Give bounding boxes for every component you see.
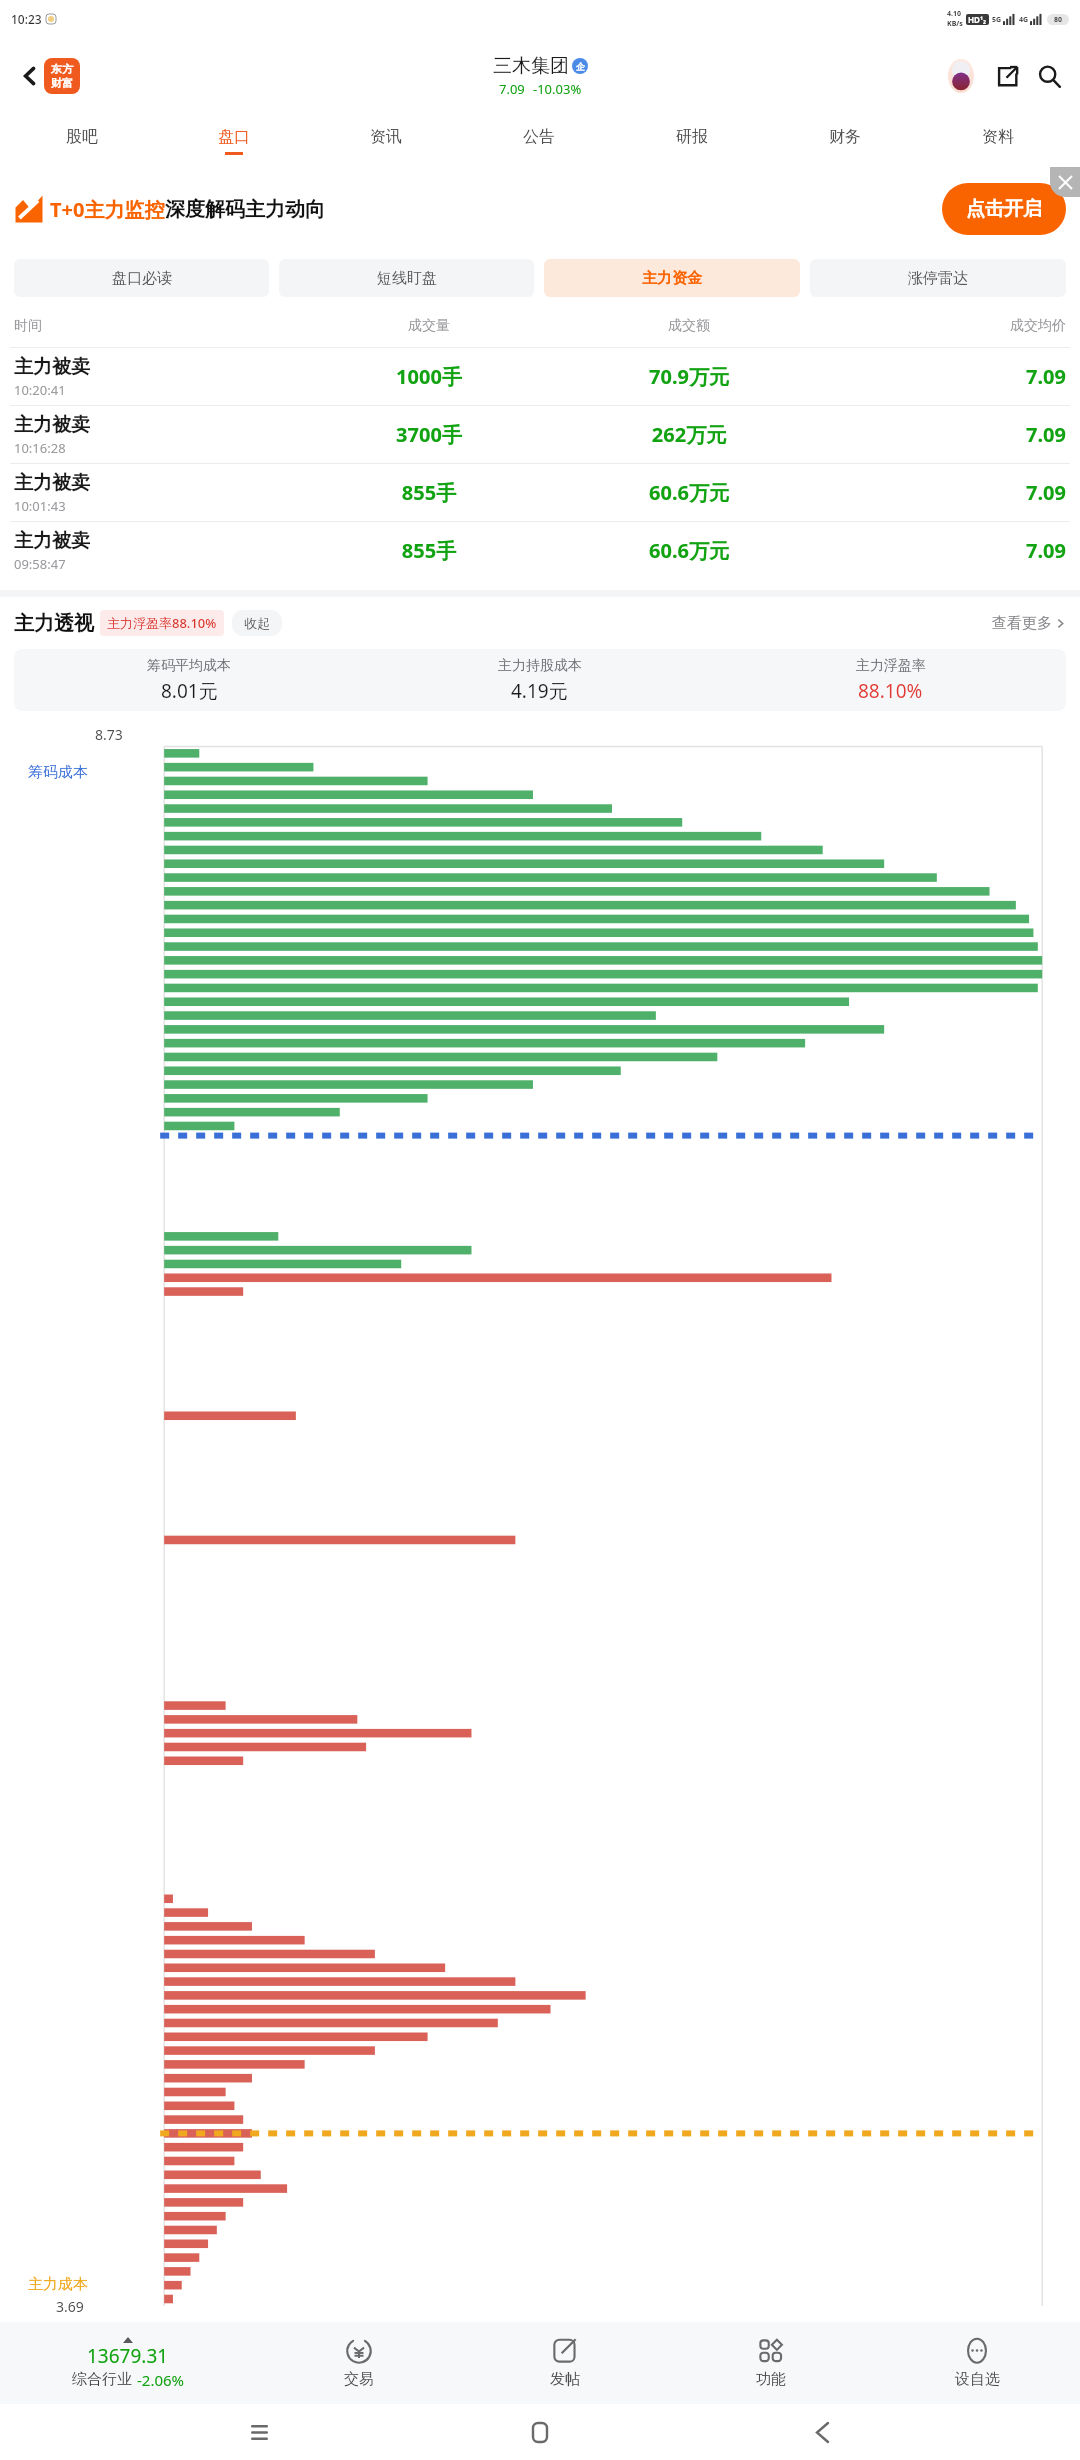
staticText: 三木集团: [493, 54, 569, 78]
staticText: 交易: [344, 2370, 374, 2389]
staticText: 主力被卖: [14, 355, 90, 379]
button[interactable]: 筹码平均成本: [14, 649, 1066, 711]
staticText: 主力被卖: [14, 529, 90, 553]
button[interactable]: T+0主力监控: [14, 167, 1066, 251]
staticText: 企: [576, 61, 585, 72]
staticText: 时间: [14, 317, 299, 335]
staticText: -2.06%: [137, 2370, 185, 2390]
staticText: 80: [1054, 15, 1063, 25]
staticText: 深度解码主力动向: [165, 197, 325, 222]
staticText: 4.10: [947, 9, 961, 19]
staticText: 公告: [523, 127, 555, 147]
button[interactable]: 主力浮盈率88.10%: [107, 614, 217, 632]
button[interactable]: 东方: [44, 58, 80, 94]
staticText: 资料: [982, 127, 1014, 147]
staticText: 10:23: [11, 11, 42, 27]
staticText: 10:20:41: [14, 381, 66, 399]
staticText: 设自选: [955, 2370, 1000, 2389]
button[interactable]: 股吧: [6, 115, 158, 167]
button[interactable]: 设自选: [874, 2322, 1080, 2404]
staticText: 主力透视: [14, 611, 94, 636]
button[interactable]: 短线盯盘: [279, 259, 534, 297]
staticText: 盘口必读: [112, 269, 172, 288]
staticText: 09:58:47: [14, 555, 66, 573]
staticText: 盘口: [218, 127, 250, 147]
button[interactable]: 财务: [768, 115, 921, 167]
staticText: 主力被卖: [14, 471, 90, 495]
staticText: 10:16:28: [14, 439, 66, 457]
staticText: 东方: [51, 62, 73, 76]
button[interactable]: 功能: [668, 2322, 874, 2404]
staticText: 10:01:43: [14, 497, 66, 515]
staticText: 7.09: [819, 537, 1066, 564]
staticText: 财富: [51, 76, 73, 90]
button[interactable]: Close: [1050, 167, 1080, 197]
staticText: 4G: [1019, 15, 1029, 25]
staticText: 88.10%: [858, 678, 923, 704]
button[interactable]: 盘口必读: [14, 259, 269, 297]
staticText: 发帖: [550, 2370, 580, 2389]
button[interactable]: 收起: [244, 615, 270, 631]
staticText: 功能: [756, 2370, 786, 2389]
button[interactable]: 发帖: [462, 2322, 668, 2404]
staticText: 3.69: [56, 2297, 84, 2316]
staticText: 13679.31: [87, 2343, 169, 2369]
staticText: 主力成本: [28, 2275, 88, 2294]
staticText: 综合行业: [72, 2370, 132, 2389]
button[interactable]: 主力被卖: [14, 406, 1066, 463]
staticText: 短线盯盘: [377, 269, 437, 288]
button[interactable]: Back: [799, 2409, 845, 2455]
staticText: 60.6万元: [559, 479, 819, 506]
button[interactable]: 主力被卖: [14, 464, 1066, 521]
staticText: 成交量: [299, 317, 559, 335]
staticText: 涨停雷达: [908, 269, 968, 288]
button[interactable]: 主力被卖: [14, 348, 1066, 405]
staticText: 成交均价: [819, 317, 1066, 335]
button[interactable]: Recents: [236, 2409, 282, 2455]
staticText: 8.01元: [161, 678, 218, 704]
button[interactable]: 公告: [462, 115, 615, 167]
button[interactable]: 资讯: [310, 115, 462, 167]
staticText: 7.09: [499, 80, 525, 98]
staticText: KB/s: [947, 19, 963, 29]
button[interactable]: Share: [990, 59, 1024, 93]
button[interactable]: 交易: [256, 2322, 462, 2404]
staticText: 262万元: [559, 421, 819, 448]
button[interactable]: 涨停雷达: [810, 259, 1066, 297]
staticText: 5G: [992, 15, 1002, 25]
staticText: -10.03%: [533, 80, 582, 98]
staticText: 成交额: [559, 317, 819, 335]
staticText: 点击开启: [966, 197, 1042, 221]
staticText: 主力被卖: [14, 413, 90, 437]
button[interactable]: 主力资金: [544, 259, 800, 297]
button[interactable]: 资料: [921, 115, 1074, 167]
staticText: 1000手: [299, 363, 559, 390]
staticText: 财务: [829, 127, 861, 147]
staticText: 8.73: [95, 725, 123, 744]
button[interactable]: Back: [12, 58, 48, 94]
staticText: 资讯: [370, 127, 402, 147]
staticText: 70.9万元: [559, 363, 819, 390]
staticText: 主力资金: [642, 269, 702, 288]
button[interactable]: 主力被卖: [14, 522, 1066, 579]
button[interactable]: AI assistant: [942, 57, 980, 95]
staticText: 7.09: [819, 363, 1066, 390]
staticText: 4.19元: [511, 678, 568, 704]
staticText: 筹码成本: [28, 763, 88, 782]
button[interactable]: 13679.31: [0, 2322, 256, 2404]
staticText: HD¹₂: [968, 14, 987, 25]
button[interactable]: 盘口: [158, 115, 310, 167]
staticText: 收起: [244, 615, 270, 631]
staticText: 60.6万元: [559, 537, 819, 564]
staticText: 855手: [299, 479, 559, 506]
staticText: 7.09: [819, 421, 1066, 448]
button[interactable]: 查看更多: [992, 614, 1066, 633]
button[interactable]: Search: [1032, 59, 1066, 93]
button[interactable]: Home: [517, 2409, 563, 2455]
staticText: 主力持股成本: [498, 657, 582, 675]
staticText: 筹码平均成本: [147, 657, 231, 675]
staticText: 研报: [676, 127, 708, 147]
button[interactable]: 点击开启: [942, 183, 1066, 235]
button[interactable]: 研报: [615, 115, 768, 167]
staticText: 主力浮盈率88.10%: [107, 614, 217, 632]
